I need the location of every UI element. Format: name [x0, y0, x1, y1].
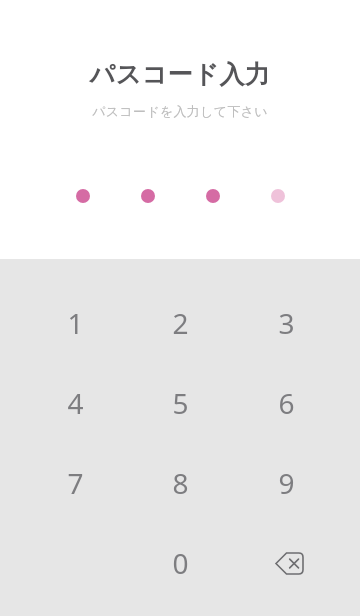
button[interactable]: 1: [0, 283, 120, 363]
button[interactable]: 7: [0, 443, 120, 523]
button[interactable]: 0: [120, 523, 240, 603]
button[interactable]: Backspace: [240, 523, 360, 603]
staticText: 9: [278, 464, 295, 502]
button[interactable]: 3: [240, 283, 360, 363]
button[interactable]: 5: [120, 363, 240, 443]
button[interactable]: 6: [240, 363, 360, 443]
staticText: 5: [172, 384, 189, 422]
staticText: 7: [67, 464, 84, 502]
button[interactable]: 9: [240, 443, 360, 523]
staticText: 3: [278, 304, 295, 342]
staticText: 2: [172, 304, 189, 342]
staticText: パスコードを入力して下さい: [0, 103, 360, 119]
button[interactable]: 4: [0, 363, 120, 443]
button[interactable]: 8: [120, 443, 240, 523]
staticText: 1: [67, 304, 84, 342]
staticText: パスコード入力: [0, 59, 360, 90]
staticText: 0: [172, 544, 189, 582]
staticText: 8: [172, 464, 189, 502]
button[interactable]: 2: [120, 283, 240, 363]
staticText: 6: [278, 384, 295, 422]
staticText: 4: [67, 384, 84, 422]
